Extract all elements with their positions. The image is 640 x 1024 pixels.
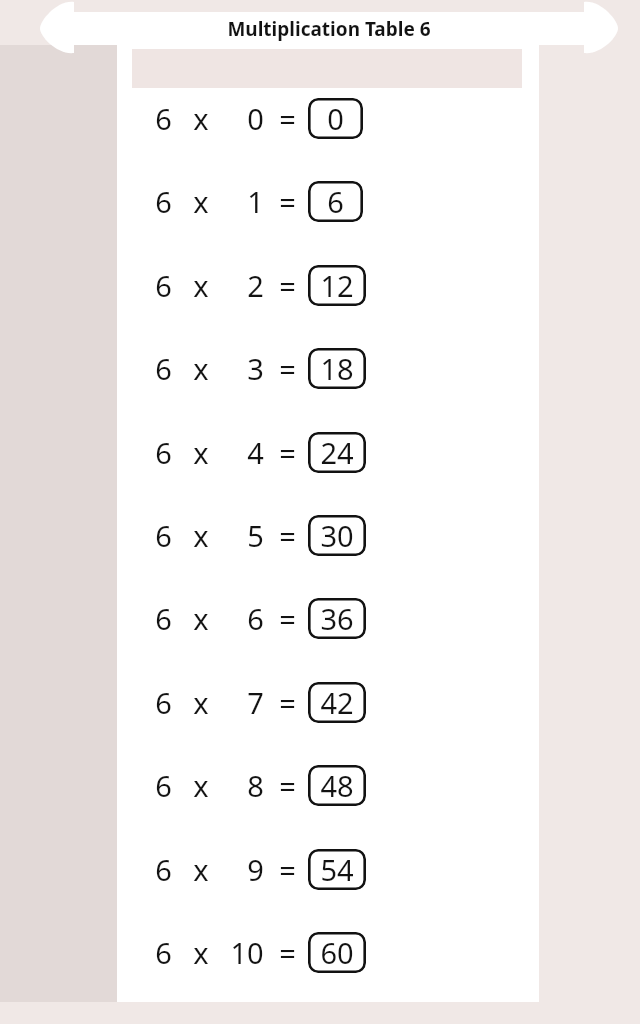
staticText: 8 <box>247 766 264 805</box>
staticText: 6 <box>155 766 172 805</box>
staticText: 6 <box>155 433 172 472</box>
staticText: 60 <box>320 933 354 972</box>
staticText: 24 <box>320 433 354 472</box>
staticText: = <box>279 266 296 305</box>
staticText: 9 <box>247 850 264 889</box>
staticText: 5 <box>247 516 264 555</box>
button[interactable]: 6 <box>150 95 430 141</box>
staticText: = <box>279 766 296 805</box>
staticText: 6 <box>155 349 172 388</box>
button[interactable]: 48 <box>308 765 366 806</box>
staticText: x <box>193 99 209 138</box>
staticText: x <box>193 683 209 722</box>
staticText: = <box>279 99 296 138</box>
staticText: = <box>279 933 296 972</box>
button[interactable]: 36 <box>308 598 366 639</box>
button[interactable]: 0 <box>308 98 363 139</box>
button[interactable]: 60 <box>308 932 366 973</box>
staticText: x <box>193 266 209 305</box>
staticText: 12 <box>320 266 354 305</box>
staticText: = <box>279 349 296 388</box>
button[interactable]: 6 <box>150 929 430 975</box>
button[interactable]: 6 <box>150 762 430 808</box>
staticText: 42 <box>320 683 354 722</box>
staticText: 1 <box>247 182 264 221</box>
staticText: 6 <box>155 99 172 138</box>
staticText: 2 <box>247 266 264 305</box>
staticText: 6 <box>155 182 172 221</box>
staticText: 30 <box>320 516 354 555</box>
staticText: 6 <box>155 850 172 889</box>
staticText: 6 <box>247 599 264 638</box>
staticText: = <box>279 599 296 638</box>
staticText: x <box>193 766 209 805</box>
staticText: 6 <box>155 266 172 305</box>
staticText: 4 <box>247 433 264 472</box>
staticText: = <box>279 433 296 472</box>
staticText: 10 <box>230 933 264 972</box>
staticText: = <box>279 850 296 889</box>
staticText: 18 <box>320 349 354 388</box>
staticText: = <box>279 182 296 221</box>
button[interactable]: 18 <box>308 348 366 389</box>
staticText: x <box>193 516 209 555</box>
staticText: 6 <box>155 516 172 555</box>
staticText: 6 <box>327 182 344 221</box>
button[interactable]: 6 <box>150 846 430 892</box>
staticText: 3 <box>247 349 264 388</box>
staticText: x <box>193 433 209 472</box>
button[interactable]: 6 <box>308 181 363 222</box>
staticText: = <box>279 516 296 555</box>
staticText: Multiplication Table 6 <box>227 16 431 42</box>
button[interactable]: Multiplication Table 6 <box>40 12 618 45</box>
staticText: 6 <box>155 683 172 722</box>
staticText: 0 <box>327 99 344 138</box>
staticText: x <box>193 182 209 221</box>
staticText: x <box>193 850 209 889</box>
staticText: x <box>193 933 209 972</box>
button[interactable]: 54 <box>308 849 366 890</box>
button[interactable]: 6 <box>150 512 430 558</box>
staticText: x <box>193 349 209 388</box>
button[interactable]: 24 <box>308 432 366 473</box>
staticText: 48 <box>320 766 354 805</box>
staticText: 54 <box>320 850 354 889</box>
button[interactable]: 6 <box>150 345 430 391</box>
staticText: 6 <box>155 933 172 972</box>
button[interactable]: 42 <box>308 682 366 723</box>
button[interactable]: 6 <box>150 679 430 725</box>
button[interactable]: 6 <box>150 429 430 475</box>
button[interactable]: 12 <box>308 265 366 306</box>
button[interactable]: 6 <box>150 178 430 224</box>
button[interactable]: 30 <box>308 515 366 556</box>
staticText: 7 <box>247 683 264 722</box>
staticText: = <box>279 683 296 722</box>
button[interactable]: 6 <box>150 262 430 308</box>
staticText: 36 <box>320 599 354 638</box>
staticText: x <box>193 599 209 638</box>
staticText: 6 <box>155 599 172 638</box>
button[interactable]: 6 <box>150 595 430 641</box>
staticText: 0 <box>247 99 264 138</box>
